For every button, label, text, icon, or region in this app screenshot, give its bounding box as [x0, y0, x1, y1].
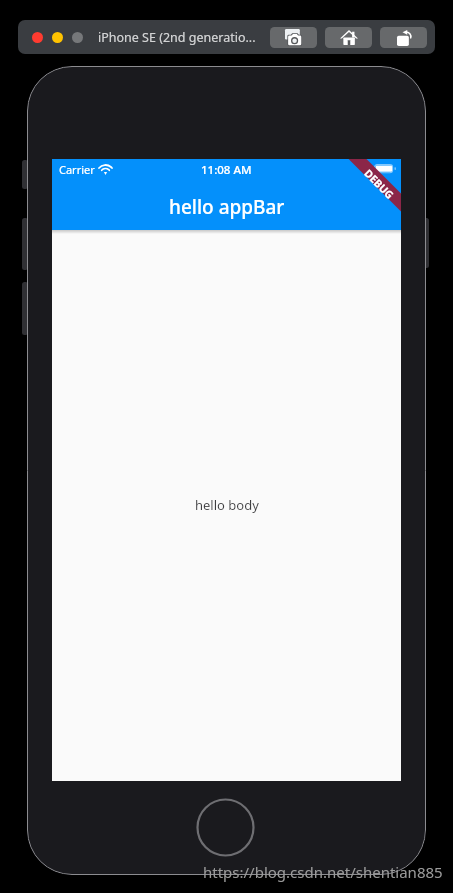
staticText: 11:08 AM	[201, 162, 252, 178]
staticText: DEBUG	[361, 166, 397, 202]
staticText: Carrier	[59, 162, 95, 177]
button[interactable]: Zoom window	[72, 32, 83, 43]
staticText: hello appBar	[169, 194, 285, 220]
button[interactable]: Rotate	[380, 27, 427, 48]
button[interactable]: Close window	[32, 32, 43, 43]
staticText: hello body	[195, 496, 259, 514]
button[interactable]: Carrier	[52, 159, 401, 781]
button[interactable]: Minimise window	[52, 32, 63, 43]
staticText: iPhone SE (2nd generatio...	[98, 29, 256, 46]
button[interactable]: Home	[325, 27, 372, 48]
button[interactable]: Take screenshot	[270, 27, 317, 48]
staticText: https://blog.csdn.net/shentian885	[203, 862, 443, 882]
